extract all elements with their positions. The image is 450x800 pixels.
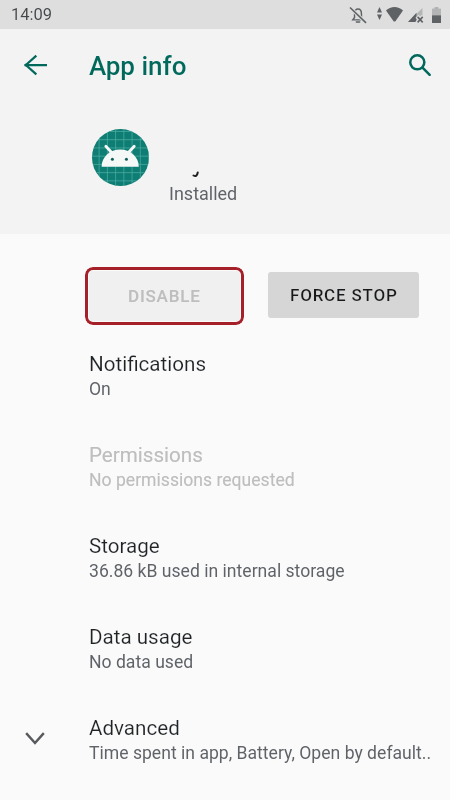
staticText: No data used bbox=[89, 652, 194, 673]
button[interactable]: Notifications bbox=[0, 331, 450, 422]
staticText: Storage bbox=[89, 534, 160, 558]
button[interactable]: Back bbox=[11, 41, 59, 89]
button[interactable]: FORCE STOP bbox=[268, 272, 419, 318]
staticText: On bbox=[89, 379, 111, 400]
staticText: No permissions requested bbox=[89, 470, 295, 491]
button[interactable]: Permissions bbox=[0, 422, 450, 513]
button[interactable]: Data usage bbox=[0, 604, 450, 695]
button[interactable]: Storage bbox=[0, 513, 450, 604]
staticText: DISABLE bbox=[128, 286, 201, 306]
staticText: Time spent in app, Battery, Open by defa… bbox=[89, 743, 432, 764]
staticText: Installed bbox=[169, 183, 238, 204]
staticText: App info bbox=[89, 51, 187, 81]
staticText: FORCE STOP bbox=[290, 285, 398, 305]
staticText: Advanced bbox=[89, 716, 180, 740]
button[interactable]: Advanced bbox=[0, 695, 450, 786]
staticText: Permissions bbox=[89, 443, 203, 467]
button[interactable]: DISABLE bbox=[89, 271, 240, 321]
staticText: 14:09 bbox=[11, 5, 53, 24]
button[interactable]: Search bbox=[395, 41, 443, 89]
staticText: Data usage bbox=[89, 625, 193, 649]
staticText: 36.86 kB used in internal storage bbox=[89, 561, 345, 582]
staticText: Notifications bbox=[89, 352, 207, 376]
